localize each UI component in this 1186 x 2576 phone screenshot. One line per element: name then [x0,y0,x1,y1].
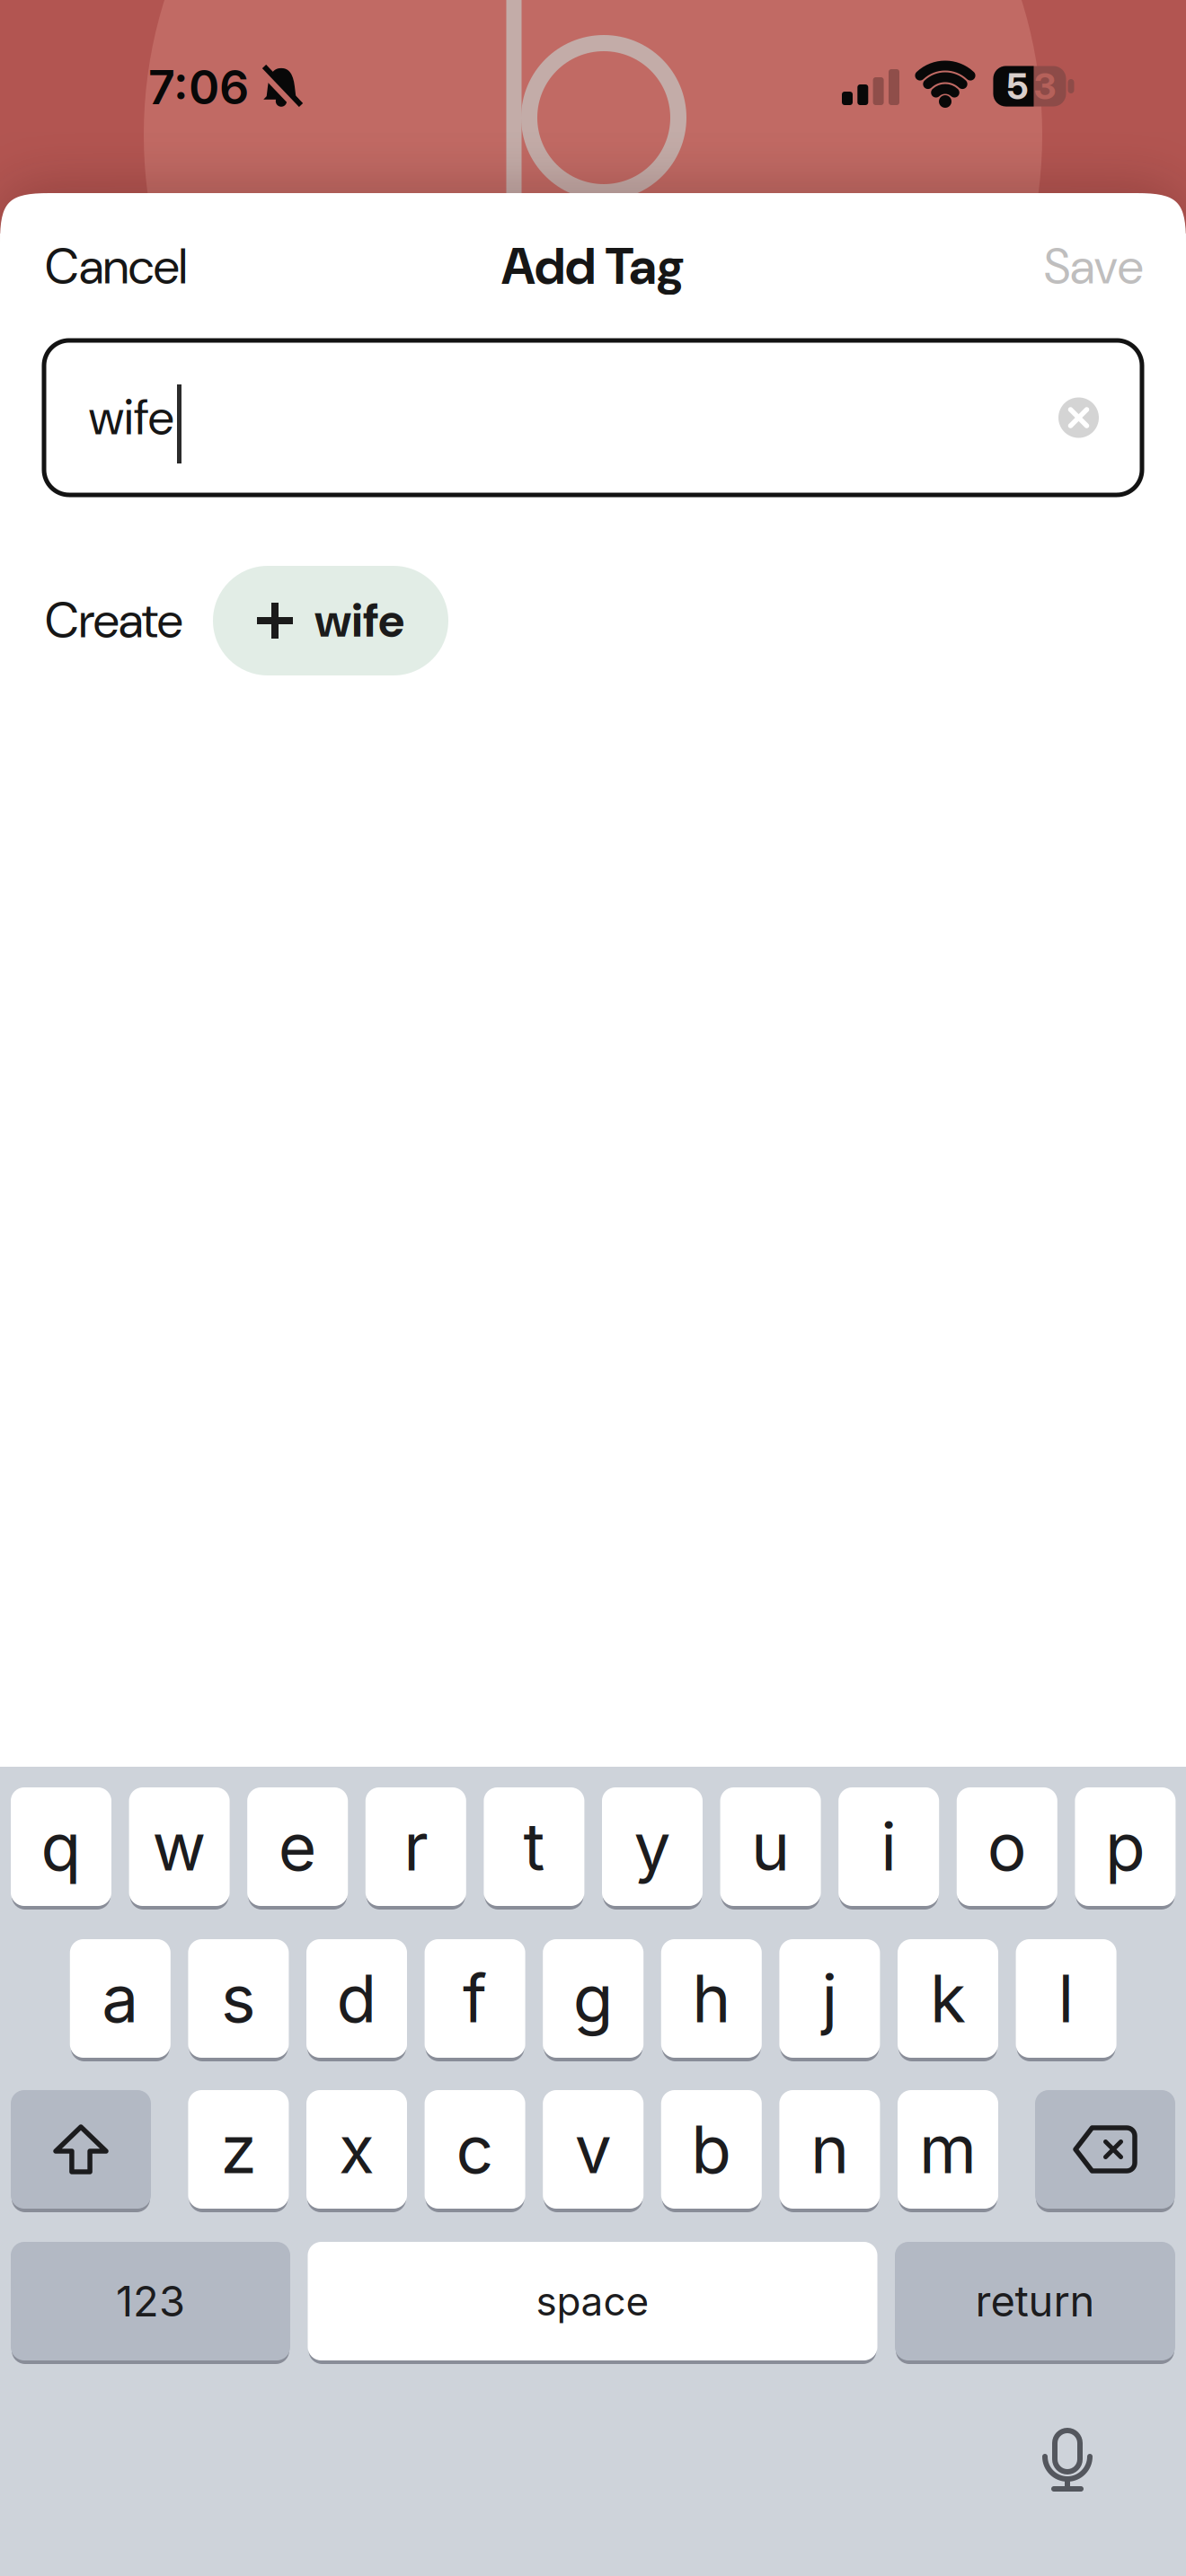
staticText: q [41,1807,81,1886]
button[interactable]: w [129,1786,230,1908]
staticText: z [220,2110,256,2189]
staticText: wife [314,590,404,651]
staticText: r [404,1807,428,1886]
staticText: Cancel [45,235,187,298]
staticText: 5 [1007,64,1028,108]
staticText: k [930,1959,966,2038]
staticText: t [523,1807,545,1886]
button[interactable]: n [779,2088,880,2210]
button[interactable]: j [779,1937,880,2060]
button[interactable]: l [1016,1937,1116,2060]
button[interactable]: h [661,1937,762,2060]
button[interactable]: Shift [11,2088,151,2210]
button[interactable]: m [898,2088,998,2210]
staticText: e [278,1807,317,1886]
button[interactable]: u [720,1786,821,1908]
staticText: 3 [1034,64,1056,108]
staticText: s [221,1959,256,2038]
button[interactable]: c [425,2088,525,2210]
button[interactable]: t [484,1786,584,1908]
button[interactable]: p [1075,1786,1176,1908]
staticText: Create [45,589,182,652]
staticText: n [810,2110,849,2189]
staticText: p [1105,1807,1145,1886]
button[interactable]: f [425,1937,525,2060]
button[interactable]: g [543,1937,643,2060]
button[interactable]: return [895,2240,1175,2362]
staticText: j [822,1959,838,2038]
button[interactable]: Cancel [45,235,187,298]
staticText: v [575,2110,612,2189]
button[interactable]: Save [1044,235,1143,298]
staticText: space [536,2277,649,2325]
staticText: Save [1044,235,1143,298]
button[interactable]: Clear text [1058,397,1099,438]
button[interactable]: y [602,1786,703,1908]
button[interactable]: a [70,1937,171,2060]
staticText: Add Tag [501,234,685,299]
staticText: w [152,1807,206,1886]
button[interactable]: b [661,2088,762,2210]
staticText: h [692,1959,731,2038]
button[interactable]: e [247,1786,348,1908]
staticText: l [1058,1959,1074,2038]
button[interactable]: q [11,1786,111,1908]
button[interactable]: Delete [1035,2088,1175,2210]
button[interactable]: wife [0,340,1186,495]
staticText: x [339,2110,375,2189]
staticText: i [881,1807,897,1886]
button[interactable]: i [838,1786,939,1908]
button[interactable]: k [898,1937,998,2060]
staticText: wife [89,386,173,449]
staticText: b [691,2110,732,2189]
staticText: y [634,1807,671,1886]
button[interactable]: wife [213,566,448,675]
button[interactable]: r [366,1786,466,1908]
staticText: g [573,1959,613,2038]
staticText: c [456,2110,494,2189]
button[interactable]: d [306,1937,407,2060]
staticText: a [102,1959,139,2038]
button[interactable]: 123 [11,2240,290,2362]
staticText: 123 [116,2276,185,2327]
staticText: d [336,1959,377,2038]
staticText: 7:06 [148,59,249,115]
staticText: f [463,1959,487,2038]
button[interactable]: z [188,2088,289,2210]
button[interactable]: x [306,2088,407,2210]
staticText: o [987,1807,1027,1886]
button[interactable]: s [188,1937,289,2060]
button[interactable]: o [957,1786,1057,1908]
staticText: return [975,2276,1095,2327]
staticText: u [751,1807,790,1886]
button[interactable]: space [308,2240,877,2362]
button[interactable]: Dictation [1040,2430,1095,2506]
button[interactable]: v [543,2088,643,2210]
staticText: m [919,2110,977,2189]
